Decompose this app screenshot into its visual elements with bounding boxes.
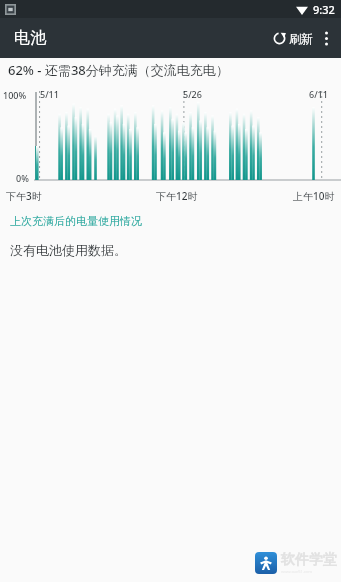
staticText: 刷新 [289,31,313,46]
staticText: 0% [16,172,29,184]
staticText: 9:32 [313,2,335,17]
staticText: 5/26 [183,88,202,100]
staticText: 下午3时 [6,189,42,203]
button[interactable]: 刷新 [268,26,318,51]
staticText: 6/11 [309,88,328,100]
staticText: 电池 [14,28,46,48]
staticText: 下午12时 [156,189,198,203]
staticText: 软件学堂 [281,551,337,569]
staticText: 5/11 [40,88,59,100]
staticText: www.xue51.com [281,569,312,574]
staticText: 没有电池使用数据。 [10,242,127,258]
button[interactable]: 上次充满后的电量使用情况 [0,212,341,232]
staticText: 上午10时 [293,189,335,203]
staticText: 62% - 还需38分钟充满（交流电充电） [8,61,229,79]
button[interactable]: More options [318,25,335,52]
staticText: 上次充满后的电量使用情况 [10,214,142,228]
staticText: 100% [3,89,27,101]
